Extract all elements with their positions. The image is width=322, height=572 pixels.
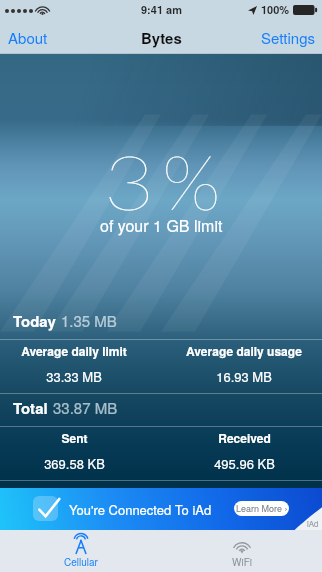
staticText: Cellular <box>64 555 98 569</box>
staticText: Sent <box>61 429 88 446</box>
staticText: Learn More › <box>236 502 288 515</box>
staticText: WiFi <box>232 555 252 569</box>
button[interactable]: Sent <box>0 427 148 481</box>
button[interactable]: Cellular <box>0 530 161 572</box>
button[interactable]: Average daily limit <box>0 340 148 394</box>
button[interactable]: Total <box>0 394 322 427</box>
button[interactable]: Today <box>0 307 322 340</box>
staticText: About <box>8 27 48 47</box>
staticText: 33.87 MB <box>53 397 118 418</box>
staticText: 369.58 KB <box>44 454 105 473</box>
staticText: 3 <box>104 134 155 226</box>
staticText: of your 1 GB limit <box>100 214 223 237</box>
button[interactable]: You're Connected To iAd <box>0 488 322 530</box>
button[interactable]: About <box>0 20 58 54</box>
button[interactable]: Received <box>170 427 318 481</box>
staticText: Average daily limit <box>21 342 127 359</box>
staticText: 33.33 MB <box>46 367 102 386</box>
staticText: 495.96 KB <box>214 454 275 473</box>
button[interactable]: Settings <box>251 20 322 54</box>
staticText: 9:41 am <box>141 2 182 18</box>
staticText: Received <box>218 429 271 446</box>
staticText: iAd <box>307 518 319 529</box>
button[interactable]: Average daily usage <box>170 340 318 394</box>
staticText: 1.35 MB <box>61 310 117 331</box>
button[interactable]: WiFi <box>161 530 322 572</box>
staticText: 16.93 MB <box>216 367 272 386</box>
staticText: Settings <box>261 27 316 47</box>
staticText: You're Connected To iAd <box>69 500 212 519</box>
staticText: % <box>162 134 221 226</box>
staticText: Total <box>13 397 48 418</box>
staticText: Today <box>13 310 56 331</box>
staticText: Average daily usage <box>186 342 302 359</box>
staticText: Bytes <box>141 27 182 48</box>
button[interactable]: Learn More › <box>234 501 289 516</box>
staticText: 100% <box>261 2 290 18</box>
